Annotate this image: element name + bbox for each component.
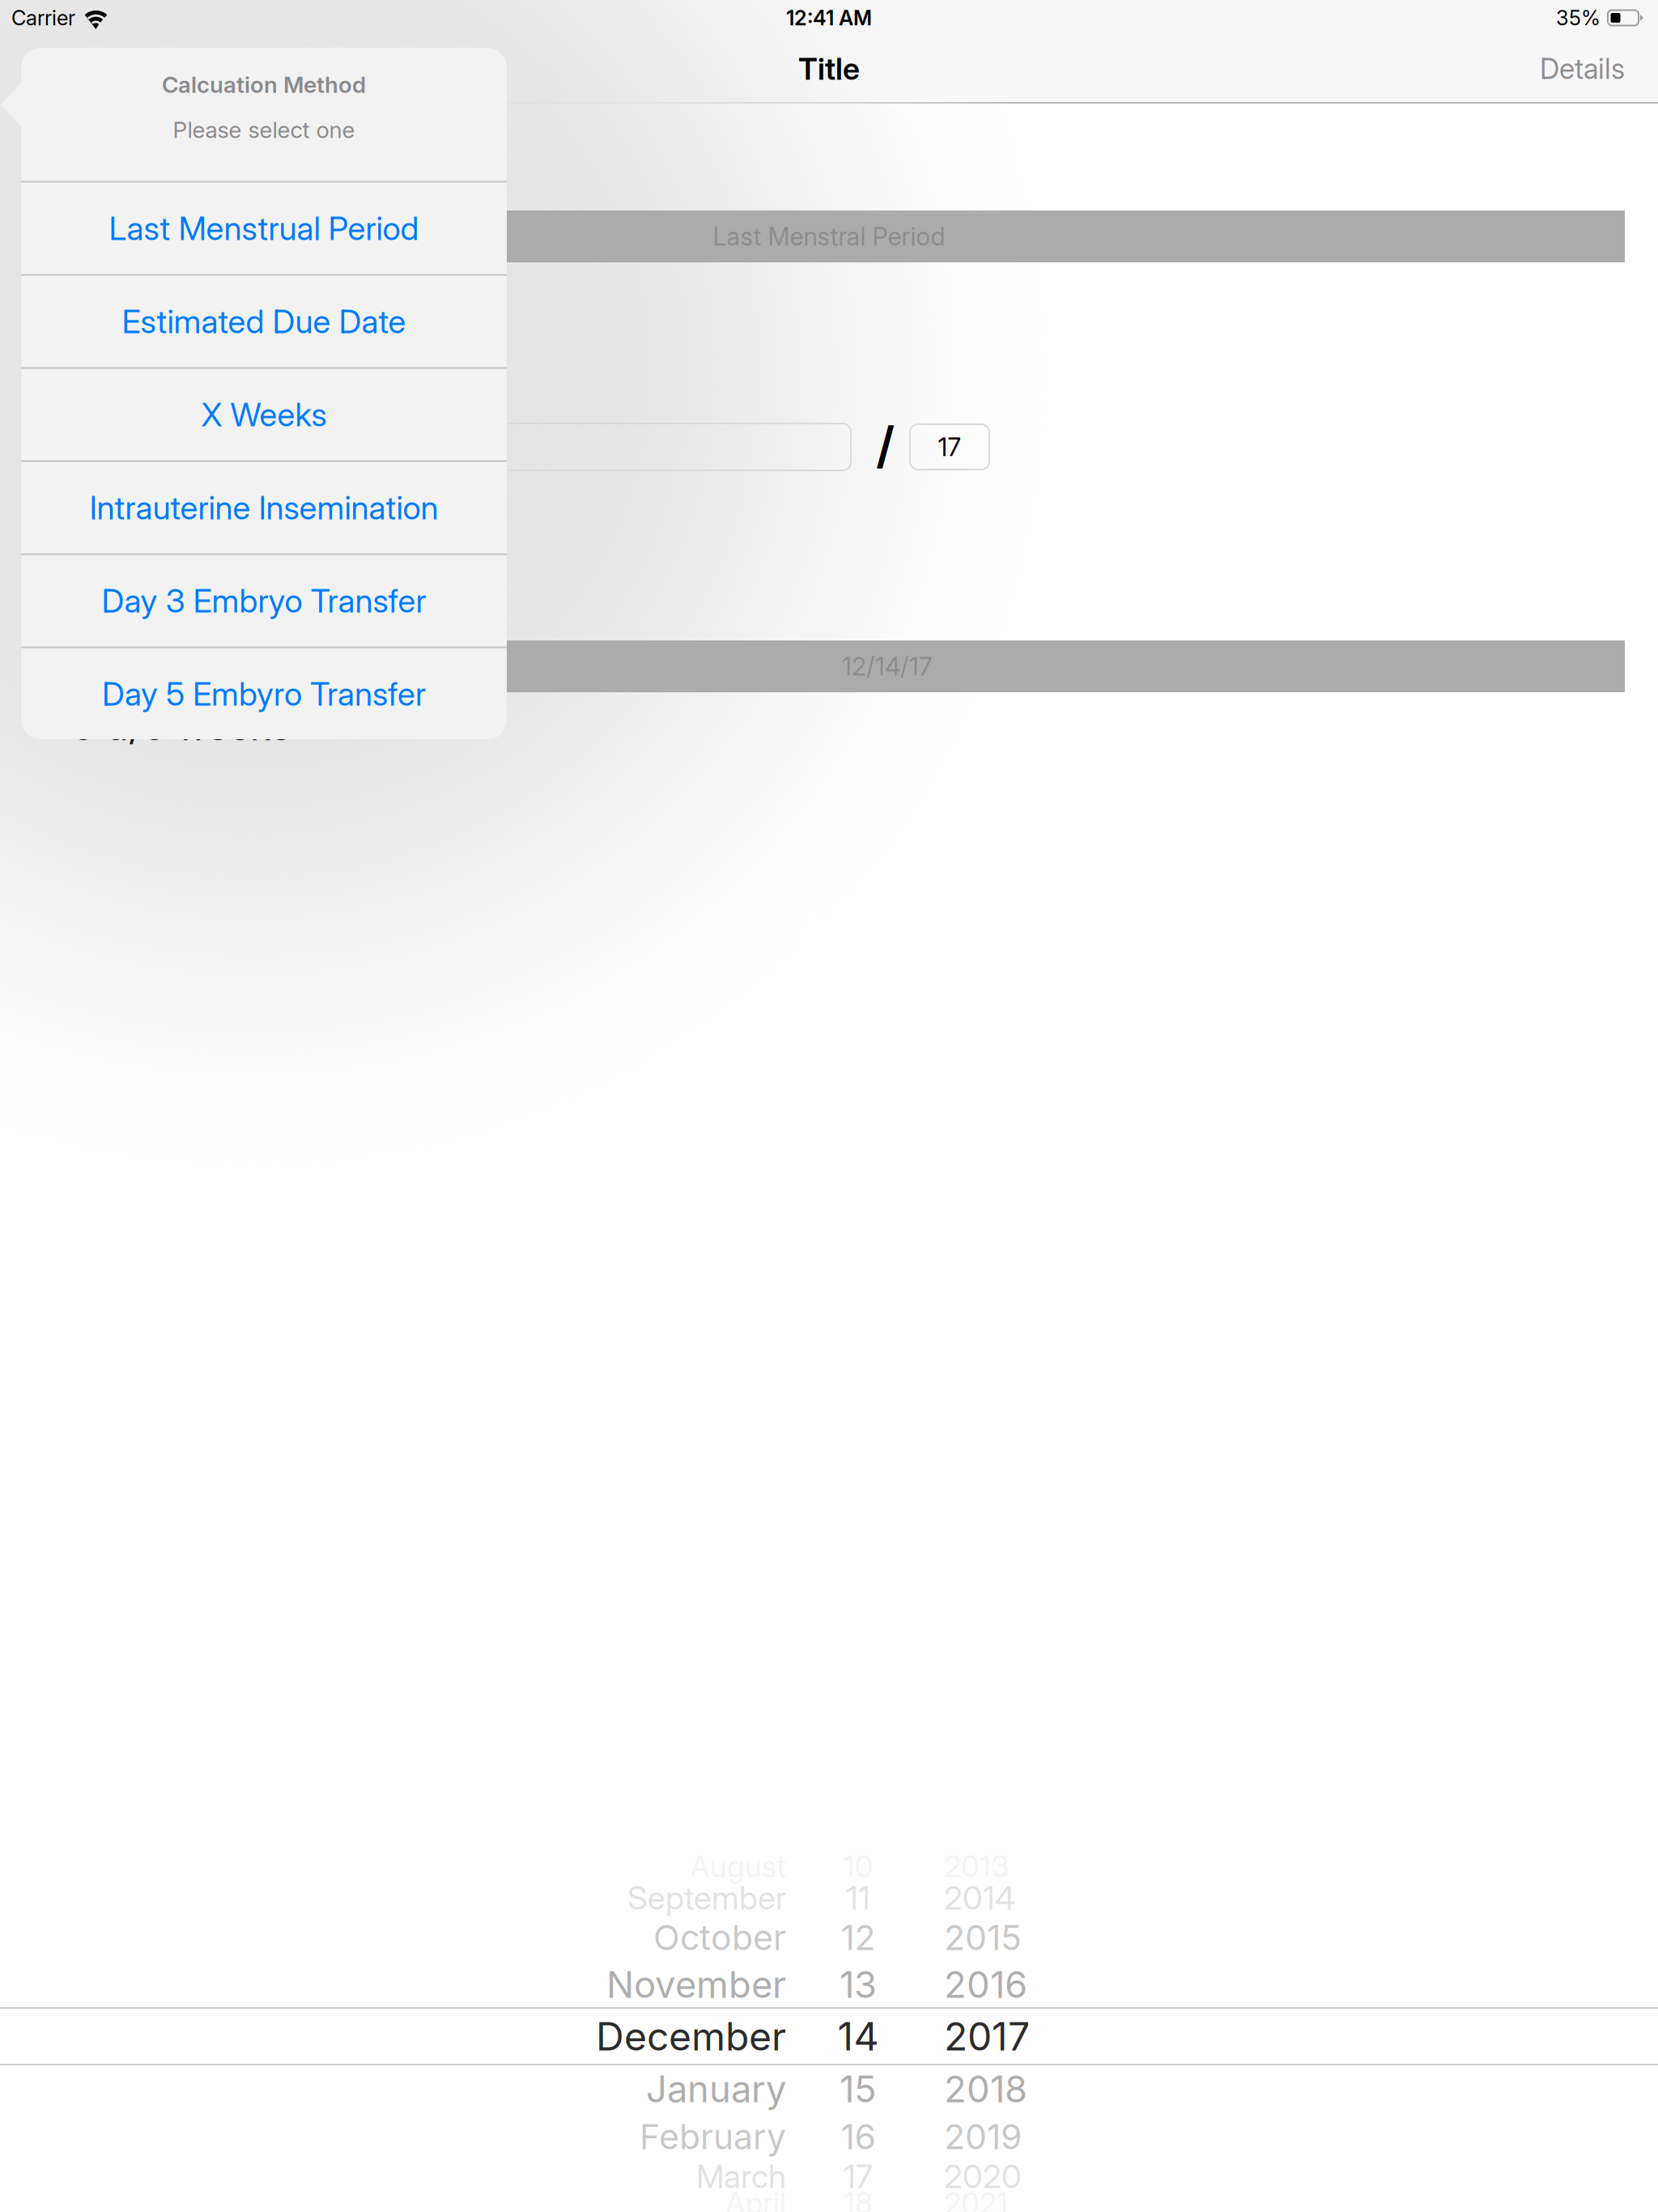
button[interactable]: 2020 [944,2159,1073,2194]
staticText: 2016 [944,1962,1027,2007]
button[interactable]: 11 [814,1880,902,1916]
staticText: 2017 [944,2013,1030,2060]
staticText: Estimated Due Date [122,302,406,341]
button[interactable]: March [486,2159,786,2194]
staticText: 2013 [944,1848,1010,1885]
button[interactable]: 12 [814,1916,902,1959]
button[interactable]: Day 5 Embyro Transfer [21,648,507,740]
staticText: 18 [844,2185,873,2212]
staticText: Calcuation Method [162,71,366,98]
button[interactable]: Estimated Due Date [21,276,507,367]
staticText: Last Menstrual Period [109,209,419,248]
staticText: December [596,2013,786,2060]
staticText: 2014 [944,1878,1015,1917]
button[interactable]: Last Menstral Period [507,211,1625,262]
staticText: 17 [938,432,961,462]
staticText: April [725,2185,786,2212]
button[interactable]: 2013 [944,1853,1073,1880]
button[interactable]: 16 [814,2115,902,2159]
staticText: 12/14/17 [842,651,933,681]
staticText: February [640,2116,786,2158]
staticText: 2015 [944,1917,1022,1958]
button[interactable]: 2014 [944,1880,1073,1916]
staticText: 35% [1556,5,1601,30]
staticText: August [690,1848,786,1885]
staticText: September [627,1878,786,1917]
staticText: 12 [841,1917,876,1958]
button[interactable]: 2016 [944,1959,1073,2010]
button[interactable]: 2018 [944,2063,1073,2115]
button[interactable]: Details [1528,39,1636,99]
button[interactable]: Last Menstrual Period [21,183,507,274]
staticText: 2020 [944,2157,1022,2196]
button[interactable]: 17 [910,424,989,470]
button[interactable]: September [486,1880,786,1916]
button[interactable]: 15 [814,2063,902,2115]
button[interactable]: 14 [814,2010,902,2063]
staticText: 2018 [944,2067,1027,2111]
button[interactable]: 2017 [944,2010,1073,2063]
button[interactable]: 2019 [944,2115,1073,2159]
staticText: 2021 [944,2185,1008,2212]
staticText: 17 [844,2157,873,2196]
staticText: / [876,415,895,475]
button[interactable]: 2021 [944,2194,1073,2212]
staticText: 12:41 AM [786,5,872,30]
staticText: October [653,1917,786,1958]
staticText: Day 5 Embyro Transfer [102,674,426,713]
button[interactable]: Intrauterine Insemination [21,462,507,553]
staticText: Carrier [11,5,75,30]
button[interactable]: December [486,2010,786,2063]
staticText: X Weeks [201,395,327,434]
staticText: 15 [840,2067,877,2111]
staticText: Day 3 Embryo Transfer [102,581,426,620]
staticText: November [606,1962,786,2007]
staticText: 13 [840,1962,877,2007]
button[interactable]: 17 [814,2159,902,2194]
staticText: 0 d/6 weeks [71,704,291,749]
button[interactable]: X Weeks [21,369,507,460]
button[interactable]: 13 [814,1959,902,2010]
button[interactable]: 2015 [944,1916,1073,1959]
staticText: March [696,2157,786,2196]
button[interactable]: October [486,1916,786,1959]
button[interactable]: 12/14/17 [507,640,1625,692]
staticText: Last Menstral Period [713,221,945,251]
button[interactable]: November [486,1959,786,2010]
staticText: Details [1540,52,1625,86]
staticText: 14 [838,2013,879,2060]
button[interactable]: January [486,2063,786,2115]
button[interactable]: 18 [814,2194,902,2212]
staticText: 2019 [944,2116,1022,2158]
staticText: 11 [846,1878,870,1917]
staticText: 10 [843,1848,873,1885]
staticText: January [646,2067,786,2111]
button[interactable]: February [486,2115,786,2159]
button[interactable]: Weeks [429,423,851,470]
button[interactable]: Day 3 Embryo Transfer [21,555,507,647]
staticText: Please select one [173,116,355,144]
staticText: 16 [841,2116,876,2158]
staticText: Title [798,51,860,87]
staticText: Intrauterine Insemination [89,488,438,527]
